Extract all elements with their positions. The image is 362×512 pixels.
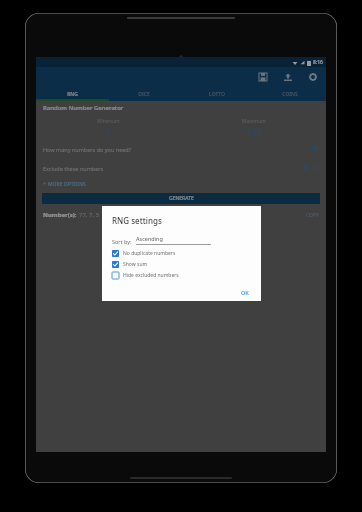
button[interactable]: Maximum bbox=[181, 118, 326, 138]
staticText: Maximum bbox=[242, 118, 266, 125]
button[interactable]: + bbox=[43, 181, 86, 188]
button[interactable]: OK bbox=[241, 289, 249, 296]
staticText: Ascending bbox=[136, 235, 163, 242]
staticText: RNG bbox=[67, 91, 78, 98]
staticText: + bbox=[43, 181, 48, 188]
staticText: 4, 13 bbox=[303, 163, 319, 173]
staticText: 8:16 bbox=[313, 59, 323, 66]
button[interactable]: Upload bbox=[281, 70, 295, 84]
button[interactable]: Settings bbox=[306, 70, 320, 84]
staticText: Exclude these numbers bbox=[43, 165, 104, 172]
button[interactable]: How many numbers do you need? bbox=[43, 144, 319, 154]
button[interactable]: Save bbox=[256, 70, 270, 84]
staticText: 1 bbox=[106, 127, 111, 138]
staticText: Random Number Generator bbox=[43, 104, 124, 112]
button[interactable]: Hide excluded numbers bbox=[112, 272, 253, 279]
button[interactable]: Ascending bbox=[136, 235, 211, 245]
button[interactable]: GENERATE bbox=[42, 193, 320, 204]
staticText: COPY bbox=[306, 212, 319, 219]
staticText: DICE bbox=[138, 91, 150, 98]
staticText: Hide excluded numbers bbox=[123, 272, 179, 279]
staticText: LOTTO bbox=[209, 91, 225, 98]
button[interactable]: Minimum bbox=[36, 118, 181, 138]
staticText: 100 bbox=[247, 127, 261, 138]
button[interactable]: No duplicate numbers bbox=[112, 250, 253, 257]
button[interactable]: LOTTO bbox=[180, 87, 253, 101]
staticText: Minimum bbox=[97, 118, 120, 125]
staticText: 77, 7, 5 bbox=[79, 211, 100, 219]
button[interactable]: RNG bbox=[36, 87, 108, 101]
staticText: How many numbers do you need? bbox=[43, 146, 132, 153]
staticText: 10 bbox=[310, 144, 319, 154]
staticText: GENERATE bbox=[169, 195, 194, 202]
staticText: RNG settings bbox=[112, 215, 162, 226]
staticText: Show sum bbox=[123, 261, 148, 268]
button[interactable]: Exclude these numbers bbox=[43, 163, 319, 173]
staticText: Sort by: bbox=[112, 238, 132, 245]
button[interactable]: Show sum bbox=[112, 261, 253, 268]
staticText: No duplicate numbers bbox=[123, 250, 176, 257]
staticText: MORE OPTIONS bbox=[48, 181, 86, 188]
button[interactable]: COPY bbox=[306, 212, 319, 219]
staticText: Number(s): bbox=[43, 211, 79, 219]
staticText: OK bbox=[241, 289, 249, 296]
staticText: COINS bbox=[282, 91, 298, 98]
button[interactable]: COINS bbox=[253, 87, 326, 101]
button[interactable]: DICE bbox=[108, 87, 180, 101]
